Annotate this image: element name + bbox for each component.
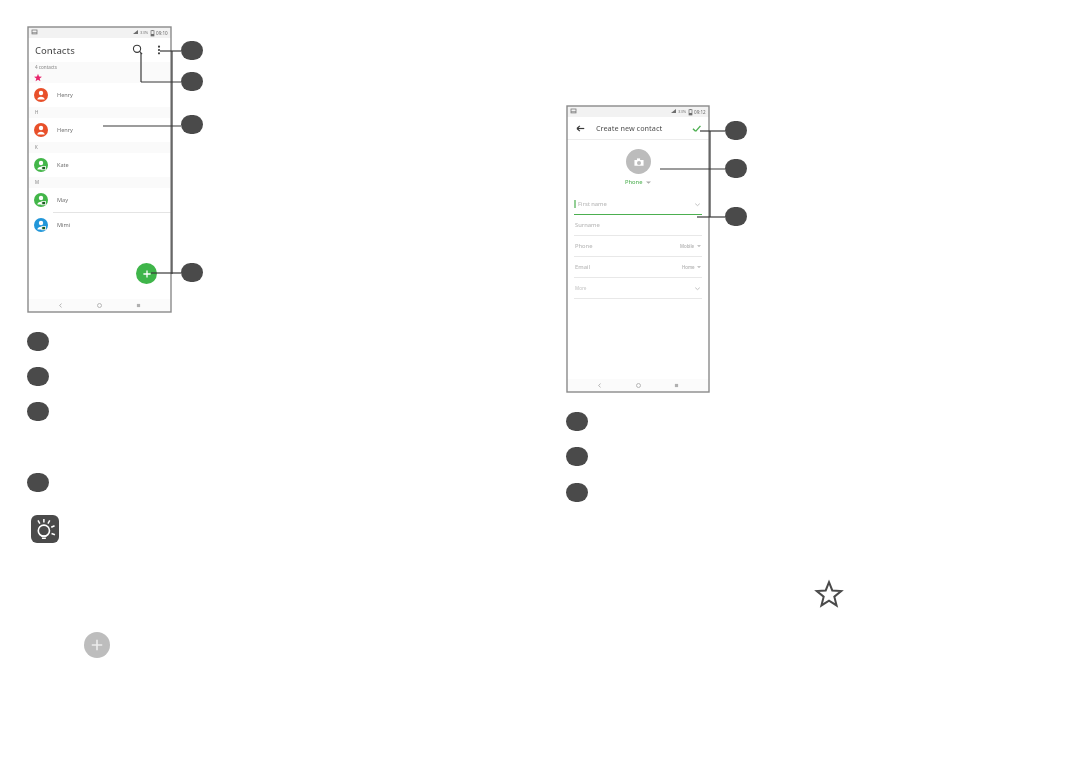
button[interactable]: Callout marker [181, 115, 203, 134]
button[interactable]: Add contact [136, 263, 157, 284]
button[interactable]: Save [688, 120, 704, 136]
button[interactable]: Callout marker [181, 263, 203, 282]
button[interactable]: Home [93, 299, 106, 312]
staticText: First name [578, 200, 607, 208]
button[interactable]: Add [84, 632, 110, 658]
staticText: M [35, 179, 39, 185]
button[interactable]: First name [567, 194, 709, 215]
staticText: Contacts [35, 44, 75, 57]
staticText: K [35, 144, 38, 150]
staticText: Kate [57, 161, 69, 169]
staticText: Create new contact [596, 123, 663, 133]
button[interactable]: Callout marker [27, 367, 49, 386]
staticText: May [57, 196, 69, 204]
button[interactable]: Callout marker [725, 207, 747, 226]
staticText: 4 contacts [35, 64, 57, 70]
button[interactable]: Home [632, 379, 645, 392]
button[interactable]: Callout marker [566, 447, 588, 466]
button[interactable]: Callout marker [725, 159, 747, 178]
button[interactable]: Back [572, 120, 588, 136]
button[interactable]: Callout marker [566, 483, 588, 502]
button[interactable]: Callout marker [566, 412, 588, 431]
staticText: 09:10 [156, 30, 168, 36]
staticText: Henry [57, 91, 73, 99]
staticText: Home [682, 264, 695, 270]
button[interactable]: Callout marker [725, 121, 747, 140]
button[interactable]: Search [129, 41, 147, 59]
button[interactable]: May [28, 188, 171, 212]
button[interactable]: Add photo [626, 149, 651, 174]
staticText: H [35, 109, 39, 115]
button[interactable]: More [567, 278, 709, 299]
staticText: Henry [57, 126, 73, 134]
staticText: Phone [625, 178, 643, 186]
button[interactable]: Callout marker [181, 72, 203, 91]
button[interactable]: Phone [567, 236, 709, 257]
button[interactable]: Mimi [28, 213, 171, 237]
button[interactable]: Henry [28, 118, 171, 142]
button[interactable]: Callout marker [27, 402, 49, 421]
button[interactable]: Tip [31, 515, 59, 543]
button[interactable]: Kate [28, 153, 171, 177]
button[interactable]: Favourite star [815, 581, 843, 609]
button[interactable]: More options [150, 41, 168, 59]
staticText: Email [575, 263, 590, 271]
staticText: 33% [140, 30, 149, 36]
button[interactable]: Back [54, 299, 67, 312]
button[interactable]: Surname [567, 215, 709, 236]
staticText: 09:12 [694, 109, 706, 115]
staticText: 33% [678, 109, 687, 115]
staticText: Phone [575, 242, 593, 250]
staticText: Surname [575, 221, 600, 229]
button[interactable]: Recents [670, 379, 683, 392]
button[interactable]: Callout marker [27, 332, 49, 351]
button[interactable]: Email [567, 257, 709, 278]
button[interactable]: Recents [132, 299, 145, 312]
button[interactable]: Callout marker [27, 473, 49, 492]
button[interactable]: Henry [28, 83, 171, 107]
staticText: More [575, 285, 587, 291]
staticText: Mobile [680, 243, 695, 249]
staticText: Mimi [57, 221, 71, 229]
button[interactable]: Callout marker [181, 41, 203, 60]
button[interactable]: Back [593, 379, 606, 392]
